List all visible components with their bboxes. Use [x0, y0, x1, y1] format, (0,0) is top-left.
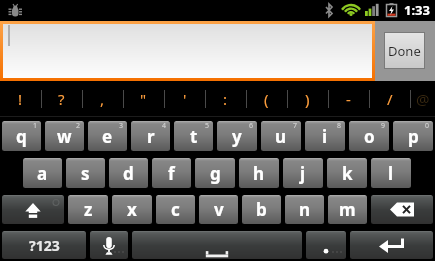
- button[interactable]: z: [68, 195, 108, 224]
- staticText: v: [214, 198, 224, 221]
- button[interactable]: ?: [41, 81, 82, 117]
- staticText: b: [256, 198, 267, 221]
- staticText: e: [102, 125, 113, 148]
- button[interactable]: a: [23, 158, 62, 188]
- button[interactable]: h: [239, 158, 279, 188]
- staticText: a: [37, 162, 48, 185]
- button[interactable]: ": [123, 81, 164, 117]
- staticText: (: [264, 89, 269, 109]
- button[interactable]: Enter: [350, 231, 433, 259]
- button[interactable]: k: [327, 158, 367, 188]
- button[interactable]: -: [328, 81, 369, 117]
- button[interactable]: ': [164, 81, 205, 117]
- staticText: y: [232, 125, 242, 148]
- button[interactable]: f: [152, 158, 191, 188]
- staticText: h: [253, 162, 265, 185]
- staticText: !: [18, 89, 23, 109]
- staticText: ": [140, 89, 147, 109]
- button[interactable]: :: [205, 81, 246, 117]
- staticText: 6: [249, 121, 254, 131]
- staticText: ): [305, 89, 310, 109]
- button[interactable]: u: [261, 121, 301, 151]
- button[interactable]: Period: [306, 231, 346, 259]
- staticText: x: [127, 198, 137, 221]
- staticText: ?123: [29, 236, 60, 255]
- staticText: q: [16, 125, 27, 148]
- staticText: c: [171, 198, 180, 221]
- button[interactable]: Voice input: [90, 231, 128, 259]
- button[interactable]: b: [242, 195, 281, 224]
- button[interactable]: w: [45, 121, 84, 151]
- staticText: i: [322, 125, 328, 148]
- button[interactable]: m: [328, 195, 367, 224]
- button[interactable]: r: [131, 121, 170, 151]
- staticText: 4: [162, 121, 167, 131]
- button[interactable]: (: [246, 81, 287, 117]
- button[interactable]: d: [109, 158, 148, 188]
- staticText: p: [408, 125, 419, 148]
- button[interactable]: q: [2, 121, 41, 151]
- button[interactable]: t: [174, 121, 213, 151]
- button[interactable]: y: [217, 121, 257, 151]
- staticText: m: [339, 198, 356, 221]
- staticText: r: [147, 125, 155, 148]
- staticText: 0: [425, 121, 430, 131]
- staticText: s: [81, 162, 90, 185]
- button[interactable]: j: [283, 158, 323, 188]
- staticText: j: [300, 162, 306, 185]
- staticText: -: [346, 89, 351, 109]
- staticText: l: [388, 162, 394, 185]
- staticText: ,: [100, 89, 105, 109]
- staticText: 7: [293, 121, 298, 131]
- button[interactable]: Done: [385, 33, 424, 68]
- staticText: 2: [76, 121, 81, 131]
- staticText: @: [416, 89, 430, 109]
- staticText: u: [275, 125, 287, 148]
- button[interactable]: n: [285, 195, 324, 224]
- staticText: 1:33: [404, 1, 430, 19]
- staticText: t: [190, 125, 198, 148]
- button[interactable]: e: [88, 121, 127, 151]
- staticText: w: [57, 125, 72, 148]
- button[interactable]: p: [393, 121, 433, 151]
- staticText: g: [210, 162, 221, 185]
- button[interactable]: Delete: [371, 195, 433, 224]
- button[interactable]: ,: [82, 81, 123, 117]
- staticText: ?: [58, 89, 65, 109]
- button[interactable]: ): [287, 81, 328, 117]
- staticText: /: [387, 89, 393, 109]
- button[interactable]: @: [410, 81, 435, 117]
- staticText: k: [342, 162, 353, 185]
- button[interactable]: l: [371, 158, 411, 188]
- button[interactable]: g: [195, 158, 235, 188]
- button[interactable]: [3, 24, 372, 78]
- button[interactable]: Space: [132, 231, 302, 259]
- button[interactable]: !: [0, 81, 41, 117]
- button[interactable]: x: [112, 195, 152, 224]
- staticText: o: [364, 125, 375, 148]
- button[interactable]: v: [199, 195, 238, 224]
- button[interactable]: s: [66, 158, 105, 188]
- staticText: n: [299, 198, 311, 221]
- staticText: 9: [381, 121, 386, 131]
- staticText: f: [168, 162, 175, 185]
- button[interactable]: o: [349, 121, 389, 151]
- staticText: z: [84, 198, 93, 221]
- staticText: Done: [388, 42, 421, 60]
- button[interactable]: i: [305, 121, 345, 151]
- staticText: 5: [205, 121, 210, 131]
- staticText: 8: [337, 121, 342, 131]
- button[interactable]: Shift: [2, 195, 64, 224]
- button[interactable]: c: [156, 195, 195, 224]
- staticText: 3: [119, 121, 124, 131]
- button[interactable]: /: [369, 81, 410, 117]
- staticText: 1: [33, 121, 38, 131]
- staticText: d: [123, 162, 134, 185]
- staticText: :: [223, 89, 228, 109]
- staticText: ': [183, 89, 187, 109]
- button[interactable]: ?123: [2, 231, 86, 259]
